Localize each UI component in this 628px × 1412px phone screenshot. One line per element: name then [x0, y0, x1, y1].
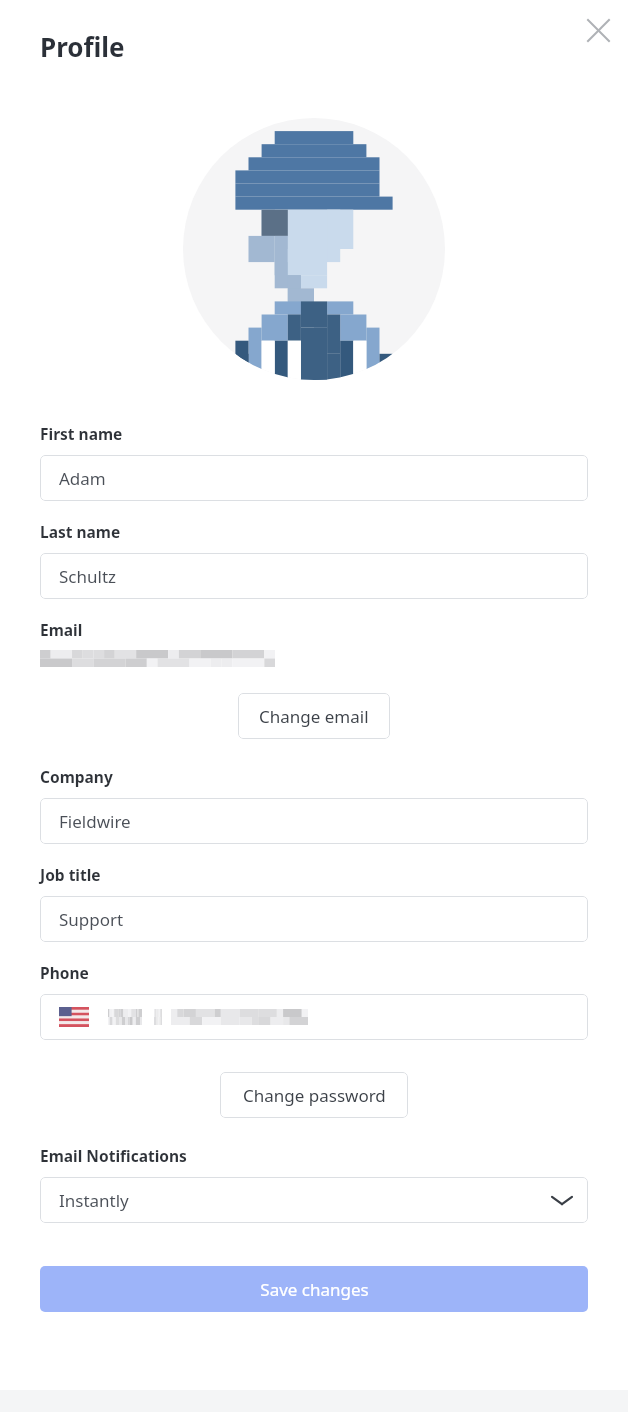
staticText: Company: [40, 766, 113, 787]
button[interactable]: Fieldwire: [40, 798, 588, 844]
staticText: Schultz: [59, 565, 117, 588]
button[interactable]: Change password: [220, 1072, 408, 1118]
staticText: Adam: [59, 467, 106, 490]
staticText: Phone: [40, 962, 89, 983]
staticText: Save changes: [260, 1278, 369, 1301]
staticText: Job title: [40, 864, 101, 885]
button[interactable]: Change email: [238, 693, 390, 739]
staticText: Support: [59, 908, 124, 931]
staticText: Last name: [40, 521, 121, 542]
staticText: First name: [40, 423, 123, 444]
staticText: Email Notifications: [40, 1145, 187, 1166]
button[interactable]: Schultz: [40, 553, 588, 599]
button[interactable]: Close: [578, 10, 618, 50]
button[interactable]: Adam: [40, 455, 588, 501]
button[interactable]: [40, 994, 588, 1040]
staticText: Instantly: [59, 1189, 129, 1212]
staticText: Change email: [259, 705, 369, 728]
staticText: Email: [40, 619, 83, 640]
button[interactable]: Instantly: [40, 1177, 588, 1223]
staticText: Fieldwire: [59, 810, 131, 833]
staticText: Profile: [40, 29, 125, 64]
staticText: Change password: [243, 1084, 386, 1107]
button[interactable]: Support: [40, 896, 588, 942]
button[interactable]: Save changes: [40, 1266, 588, 1312]
